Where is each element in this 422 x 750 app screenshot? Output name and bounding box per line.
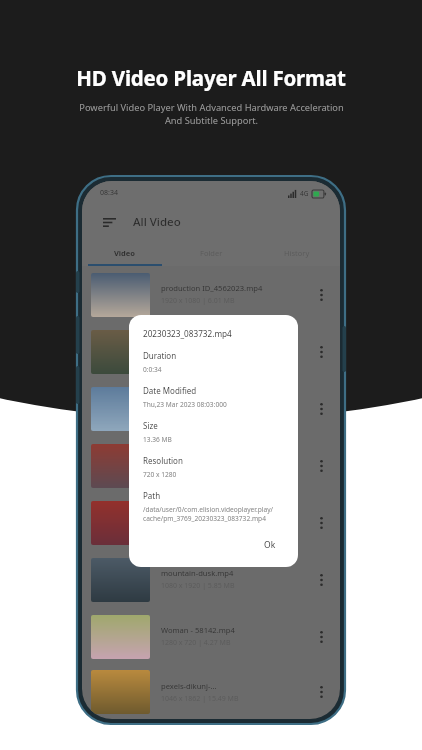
button[interactable]: More options: [311, 627, 331, 647]
button[interactable]: pexels-dikunj-...: [82, 665, 340, 719]
button[interactable]: red-leaves-clip.mp4: [82, 494, 340, 551]
staticText: Video: [114, 248, 136, 258]
button[interactable]: pexels-flower-red.mp4: [82, 437, 340, 494]
staticText: red-leaves-clip.mp4: [161, 511, 231, 521]
staticText: Duration: [143, 350, 177, 361]
button[interactable]: More options: [311, 570, 331, 590]
button[interactable]: video_2023_03_21.mp4: [82, 380, 340, 437]
staticText: 1080 x 1920 | 5.85 MB: [161, 581, 235, 591]
staticText: HD Video Player All Format: [76, 64, 346, 92]
staticText: Thu,23 Mar 2023 08:03:000: [143, 400, 227, 409]
staticText: 720 x 1280: [143, 470, 177, 479]
button[interactable]: More options: [311, 682, 331, 702]
staticText: 1920 x 1080 | 8.54 MB: [161, 353, 235, 363]
button[interactable]: Video: [82, 239, 168, 266]
staticText: Ok: [264, 539, 276, 551]
staticText: video_2023_03_21.mp4: [161, 397, 244, 407]
staticText: pexels-flower-red.mp4: [161, 454, 241, 464]
button[interactable]: More options: [311, 285, 331, 305]
staticText: Size: [143, 420, 158, 431]
staticText: 4G: [300, 189, 309, 198]
staticText: Powerful Video Player With Advanced Hard…: [79, 101, 344, 127]
staticText: Date Modified: [143, 385, 197, 396]
staticText: 1046 x 1862 | 15.49 MB: [161, 694, 239, 704]
staticText: All Video: [133, 214, 181, 230]
button[interactable]: More options: [311, 399, 331, 419]
button[interactable]: More options: [311, 456, 331, 476]
staticText: Woman - 58142.mp4: [161, 625, 235, 635]
button[interactable]: More options: [311, 342, 331, 362]
staticText: production ID_4562023.mp4: [161, 283, 263, 293]
staticText: Resolution: [143, 455, 183, 466]
staticText: History: [284, 248, 310, 258]
staticText: 13.36 MB: [143, 435, 172, 444]
button[interactable]: More options: [311, 513, 331, 533]
staticText: /data/user/0/com.elision.videoplayer.pla…: [143, 505, 274, 523]
button[interactable]: production ID_4562023.mp4: [82, 266, 340, 323]
button[interactable]: Woman - 58142.mp4: [82, 608, 340, 665]
staticText: pexels-dikunj-...: [161, 681, 217, 691]
staticText: 1280 x 720 | 4.27 MB: [161, 638, 231, 648]
staticText: 08:34: [100, 188, 118, 198]
staticText: Path: [143, 490, 161, 501]
staticText: 1920 x 1080 | 6.01 MB: [161, 296, 235, 306]
staticText: 1920 x 1080 | 7.12 MB: [161, 467, 235, 477]
button[interactable]: Ok: [256, 536, 284, 554]
button[interactable]: production ID_4440833.mp4: [82, 323, 340, 380]
button[interactable]: Menu: [98, 211, 120, 233]
staticText: 0:0:34: [143, 365, 162, 374]
staticText: Folder: [200, 248, 223, 258]
button[interactable]: mountain-dusk.mp4: [82, 551, 340, 608]
staticText: mountain-dusk.mp4: [161, 568, 234, 578]
staticText: 20230323_083732.mp4: [143, 328, 232, 339]
